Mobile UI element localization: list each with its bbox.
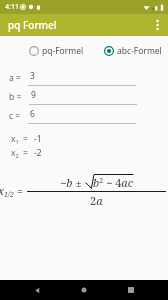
staticText: x1 =: [11, 133, 28, 146]
staticText: a =: [9, 72, 21, 84]
button[interactable]: 6: [28, 107, 136, 124]
button[interactable]: Home: [77, 283, 91, 297]
staticText: 9: [31, 89, 36, 101]
button[interactable]: pq-Formel: [28, 43, 85, 59]
staticText: 2a: [90, 193, 103, 208]
staticText: 4:11: [5, 2, 19, 12]
button[interactable]: 9: [29, 88, 137, 105]
button[interactable]: 3: [28, 69, 136, 86]
staticText: pq-Formel: [42, 45, 84, 57]
button[interactable]: More options: [146, 14, 168, 36]
staticText: abc-Formel: [117, 45, 162, 57]
staticText: x1/2 =: [0, 183, 23, 199]
staticText: 3: [30, 70, 35, 82]
staticText: b2 − 4ac: [93, 175, 134, 190]
staticText: −b ±: [60, 175, 85, 190]
button[interactable]: Back: [30, 283, 44, 297]
staticText: c =: [9, 110, 21, 122]
staticText: -1: [34, 133, 42, 145]
staticText: pq Formel: [8, 18, 57, 32]
staticText: 6: [30, 108, 35, 120]
staticText: b =: [9, 91, 22, 103]
staticText: x2 =: [11, 147, 28, 160]
staticText: -2: [34, 147, 42, 159]
button[interactable]: abc-Formel: [103, 43, 163, 59]
button[interactable]: Recents: [124, 283, 138, 297]
